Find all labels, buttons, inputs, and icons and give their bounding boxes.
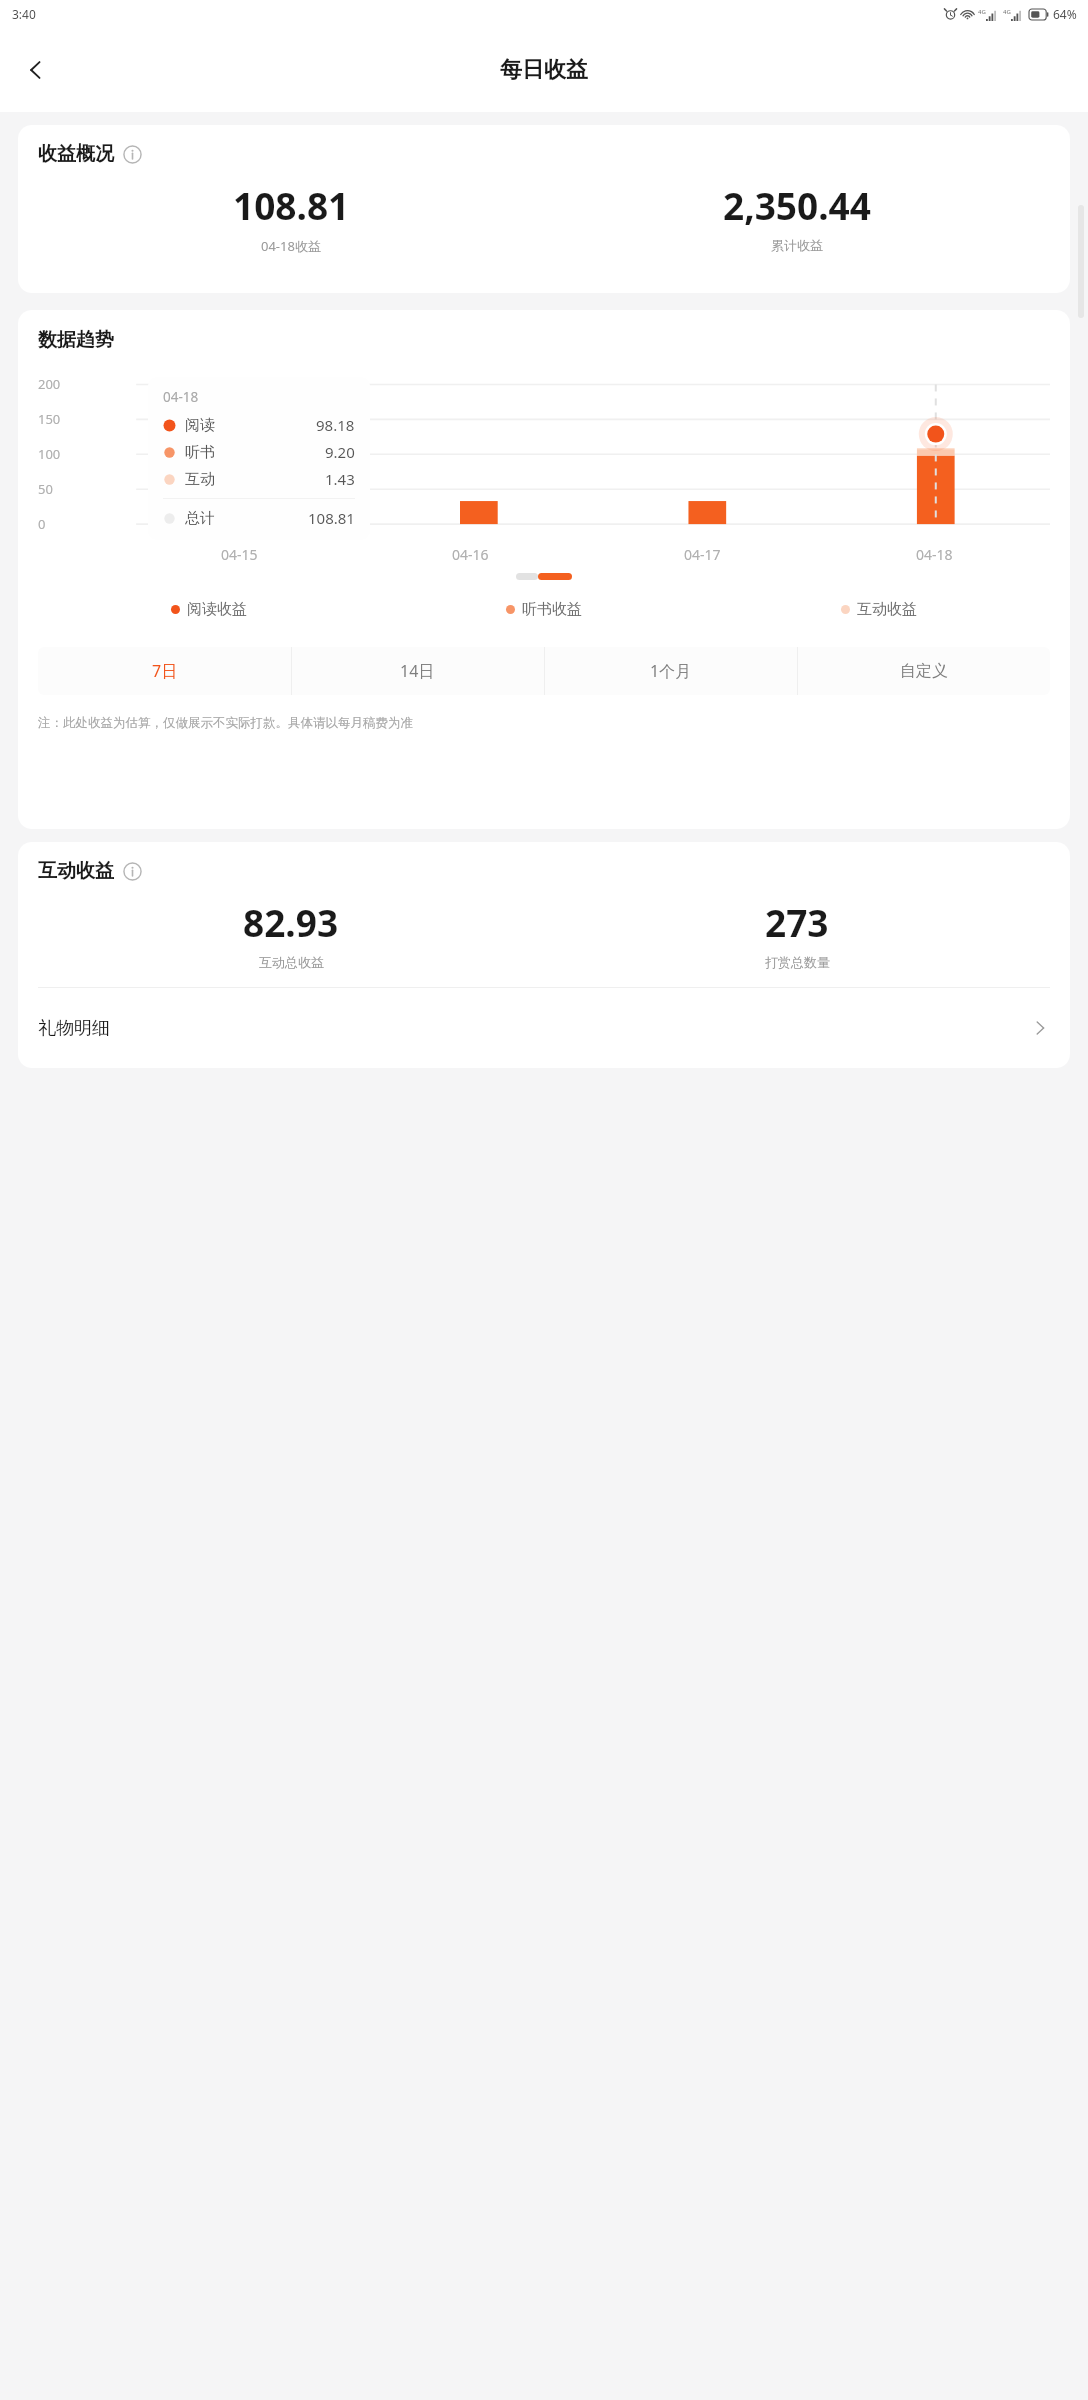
staticText: 98.18: [316, 415, 355, 435]
button[interactable]: 1个月: [544, 647, 797, 695]
button[interactable]: 14日: [291, 647, 544, 695]
button[interactable]: Back: [10, 44, 62, 96]
button[interactable]: Info: [122, 144, 143, 165]
staticText: 273: [765, 897, 829, 947]
staticText: 听书收益: [522, 600, 582, 619]
staticText: 1个月: [650, 660, 692, 682]
staticText: 04-15: [221, 545, 258, 564]
staticText: 108.81: [233, 180, 350, 230]
staticText: 100: [38, 445, 61, 463]
button[interactable]: 7日: [38, 647, 291, 695]
staticText: 04-18: [916, 545, 953, 564]
staticText: 互动: [185, 470, 215, 489]
staticText: 64%: [1053, 6, 1077, 22]
staticText: 150: [38, 410, 61, 428]
button[interactable]: 互动收益: [711, 600, 1046, 619]
staticText: 0: [38, 515, 46, 533]
staticText: 04-17: [684, 545, 721, 564]
staticText: 阅读: [185, 416, 215, 435]
button[interactable]: Info: [122, 861, 143, 882]
staticText: 82.93: [243, 897, 339, 947]
staticText: 4G: [1003, 8, 1011, 16]
staticText: 9.20: [325, 442, 355, 462]
button[interactable]: 自定义: [797, 647, 1050, 695]
staticText: 累计收益: [771, 237, 823, 253]
staticText: 2,350.44: [723, 180, 871, 230]
staticText: 04-18收益: [261, 237, 321, 255]
staticText: 阅读收益: [187, 600, 247, 619]
button[interactable]: 阅读收益: [42, 600, 376, 619]
staticText: 礼物明细: [38, 1017, 110, 1040]
staticText: 自定义: [900, 661, 948, 681]
staticText: 互动收益: [857, 600, 917, 619]
staticText: 14日: [400, 660, 435, 682]
staticText: 每日收益: [500, 56, 588, 84]
staticText: 50: [38, 480, 53, 498]
button[interactable]: 礼物明细: [18, 988, 1070, 1068]
staticText: 互动收益: [38, 859, 114, 883]
staticText: 4G: [978, 8, 986, 16]
staticText: 互动总收益: [259, 954, 324, 970]
staticText: 1.43: [325, 469, 355, 489]
staticText: 200: [38, 375, 61, 393]
staticText: 04-16: [452, 545, 489, 564]
staticText: 7日: [152, 660, 178, 682]
staticText: 108.81: [308, 508, 355, 528]
staticText: 听书: [185, 443, 215, 462]
staticText: 收益概况: [38, 142, 114, 166]
staticText: 注：此处收益为估算，仅做展示不实际打款。具体请以每月稿费为准: [38, 715, 1050, 731]
button[interactable]: 听书收益: [376, 600, 711, 619]
staticText: 04-18: [163, 388, 199, 406]
staticText: 数据趋势: [38, 328, 114, 352]
staticText: 打赏总数量: [765, 954, 830, 970]
staticText: 3:40: [12, 6, 36, 22]
staticText: 总计: [185, 509, 215, 528]
